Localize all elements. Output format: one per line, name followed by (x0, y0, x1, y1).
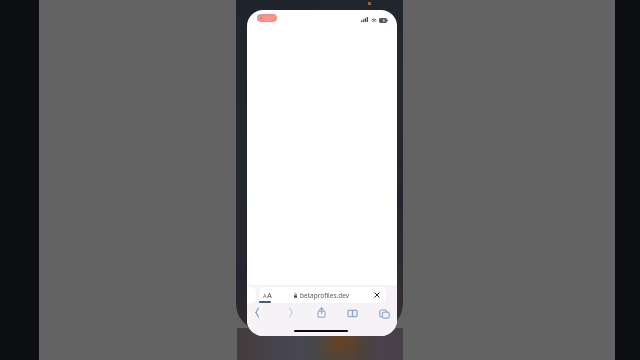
button[interactable]: Share (313, 304, 330, 321)
staticText: A (263, 292, 267, 299)
button[interactable]: Stop loading (367, 287, 386, 303)
button[interactable]: A (259, 287, 386, 303)
staticText: betaprofiles.dev (300, 291, 350, 300)
button[interactable]: Bookmarks (344, 305, 361, 322)
staticText: A (267, 290, 272, 300)
button[interactable]: Forward (282, 304, 299, 321)
button[interactable]: Screen recording (257, 14, 277, 22)
button[interactable]: Tabs (376, 305, 393, 322)
button[interactable]: Back (249, 304, 266, 321)
